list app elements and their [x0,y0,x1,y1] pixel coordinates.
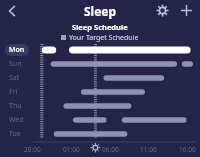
staticText: 16:00 [179,145,196,154]
button[interactable]: Back [3,2,21,20]
button[interactable]: Sun [5,58,26,70]
button[interactable]: Sat [5,72,24,84]
button[interactable]: Add [178,2,195,19]
staticText: Fri [9,87,18,97]
button[interactable]: Thu [5,100,26,112]
staticText: 06:00 [102,145,119,154]
staticText: Tue [9,129,21,139]
staticText: 20:00 [24,145,41,154]
staticText: Sleep [84,3,117,19]
staticText: Sleep Schedule [72,22,128,32]
staticText: Mon [9,45,25,55]
button[interactable]: Settings [154,2,171,19]
staticText: Your Target Schedule [69,33,139,43]
staticText: Thu [9,101,22,111]
staticText: 01:00 [63,145,80,154]
button[interactable]: Fri [5,86,22,98]
button[interactable]: Your Target Schedule [0,32,200,43]
staticText: Sun [9,59,22,69]
staticText: Wed [9,115,24,125]
button[interactable]: Mon [5,44,29,56]
button[interactable]: Wed [5,114,28,126]
staticText: Sat [9,73,20,83]
button[interactable]: Tue [5,128,25,140]
staticText: 11:00 [140,145,157,154]
